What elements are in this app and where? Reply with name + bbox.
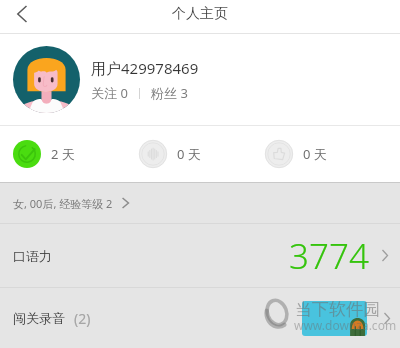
button[interactable]: 2 天 [13,134,75,174]
staticText: (2) [74,309,91,328]
staticText: 关注 0 [91,84,128,102]
staticText: 个人主页 [172,5,228,23]
staticText: 0 天 [303,145,327,163]
staticText: 2 天 [51,145,75,163]
button[interactable]: 口语力 [0,224,400,287]
button[interactable]: 女, 00后, 经验等级 2 [0,183,400,223]
staticText: 口语力 [13,248,52,264]
button[interactable]: 0 天 [139,134,201,174]
staticText: www.downza.com [294,317,397,333]
staticText: 女, 00后, 经验等级 2 [13,196,113,211]
staticText: 当下软件园 [295,299,380,320]
staticText: 粉丝 3 [151,84,188,102]
staticText: 用户429978469 [91,58,199,78]
staticText: 3774 [289,232,369,280]
staticText: 闯关录音 [13,310,65,326]
staticText: 0 天 [177,145,201,163]
button[interactable]: Back [0,0,44,31]
button[interactable]: 用户429978469 [0,34,400,125]
button[interactable]: 闯关录音 [0,288,400,348]
button[interactable]: 0 天 [265,134,327,174]
